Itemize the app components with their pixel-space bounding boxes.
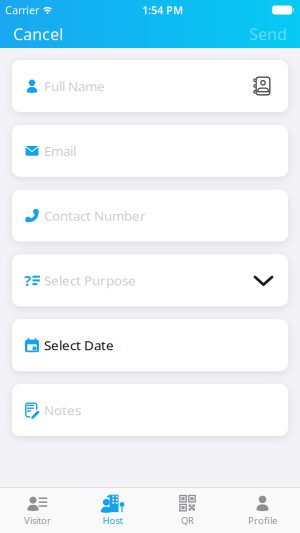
button[interactable] (251, 75, 272, 96)
staticText: Email (44, 142, 76, 160)
staticText: 1:54 PM (142, 3, 183, 17)
button[interactable]: Send (249, 23, 287, 45)
staticText: Carrier (5, 3, 39, 17)
button[interactable]: Notes (12, 384, 288, 436)
button[interactable]: Contact Number (12, 190, 288, 242)
button[interactable]: Select Date (12, 319, 288, 371)
staticText: Notes (44, 401, 81, 419)
button[interactable]: ? (12, 254, 288, 306)
staticText: Select Date (44, 336, 114, 354)
staticText: Cancel (13, 23, 63, 45)
staticText: QR (181, 514, 194, 527)
button[interactable]: QR (150, 494, 225, 527)
staticText: Contact Number (44, 207, 146, 224)
button[interactable]: Email (12, 125, 288, 177)
staticText: Full Name (44, 77, 105, 95)
button[interactable]: Host (75, 494, 150, 527)
button[interactable]: Cancel (13, 23, 63, 45)
staticText: Visitor (24, 514, 51, 527)
button[interactable]: Full Name (12, 60, 288, 112)
staticText: Host (102, 514, 122, 527)
staticText: Profile (248, 514, 277, 527)
staticText: ? (24, 271, 31, 290)
button[interactable]: Visitor (0, 494, 75, 527)
button[interactable]: Profile (225, 494, 300, 527)
staticText: Select Purpose (44, 271, 136, 289)
staticText: Send (249, 23, 287, 45)
